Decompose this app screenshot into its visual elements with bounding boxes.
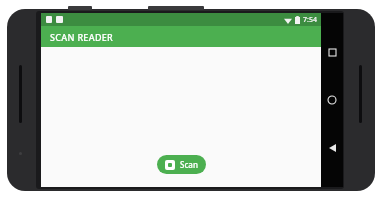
staticText: Scan [180, 159, 198, 170]
staticText: 7:54 [303, 15, 317, 25]
button[interactable]: Home [323, 91, 341, 109]
button[interactable]: Back [323, 139, 341, 157]
staticText: SCAN READER [50, 31, 114, 43]
button[interactable]: Recent apps [323, 43, 341, 61]
button[interactable]: Scan [157, 155, 206, 174]
